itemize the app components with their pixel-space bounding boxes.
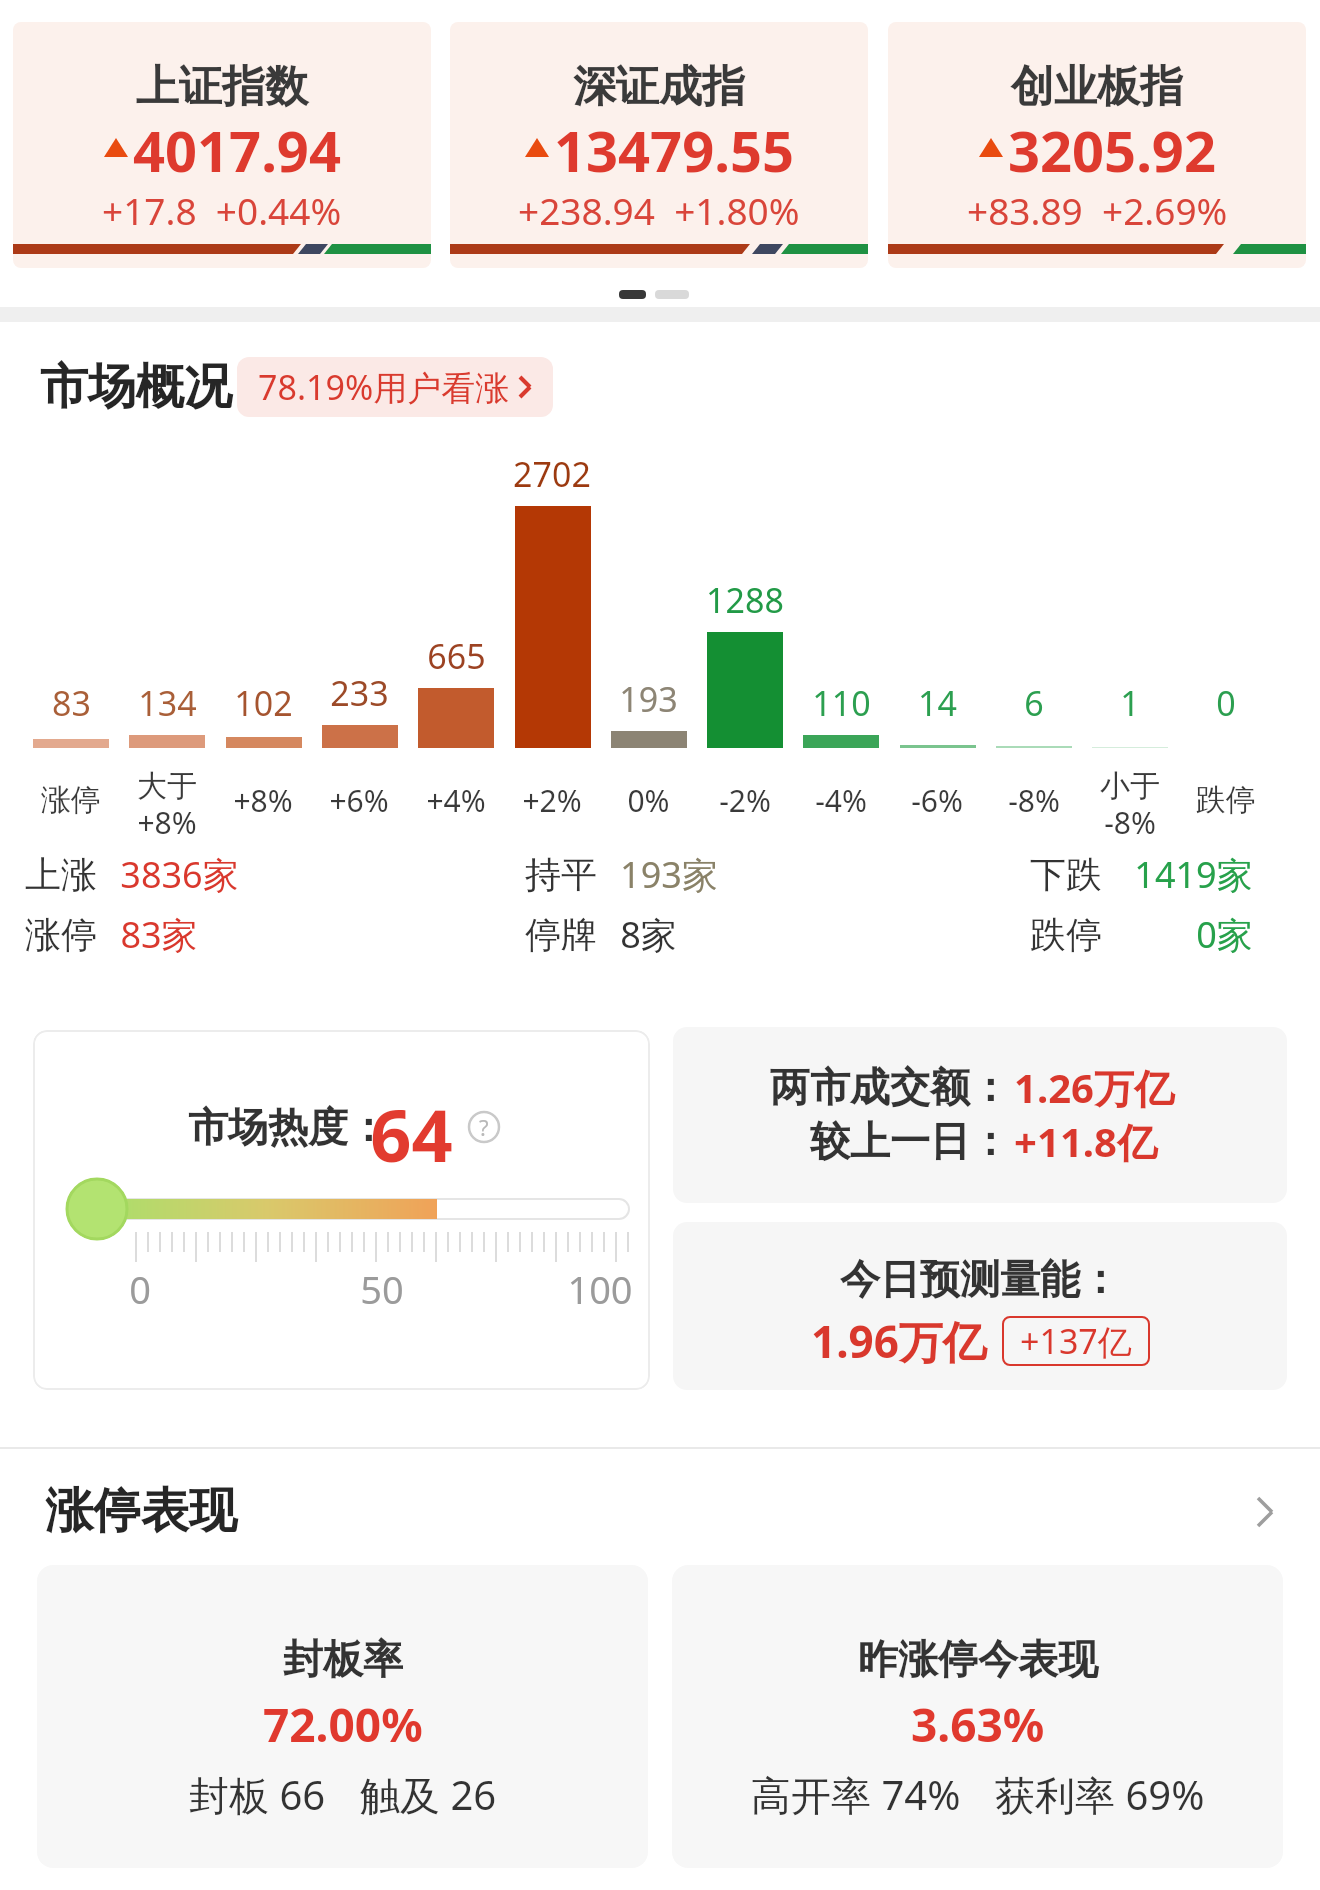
staticText: 1.26万亿 (1014, 1060, 1174, 1115)
staticText: 102 (234, 680, 293, 726)
staticText: 193家 (620, 850, 718, 899)
staticText: 8家 (620, 910, 677, 959)
staticText: 市场热度： (188, 1102, 388, 1152)
staticText: 昨涨停今表现 (858, 1634, 1098, 1684)
staticText: +6% (329, 780, 389, 821)
staticText: 78.19%用户看涨 (258, 364, 510, 410)
button[interactable] (33, 1030, 650, 1390)
staticText: 6 (1024, 680, 1044, 726)
staticText: 3836家 (120, 850, 239, 899)
button[interactable] (673, 1222, 1287, 1390)
staticText: 下跌 (1030, 852, 1102, 897)
staticText: +8% (233, 780, 293, 821)
staticText: -4% (815, 780, 867, 821)
staticText: 2702 (513, 451, 591, 497)
staticText: 涨停 (25, 912, 97, 957)
button[interactable]: 创业板指 (888, 22, 1306, 268)
staticText: ? (479, 1112, 489, 1142)
staticText: 110 (812, 680, 871, 726)
staticText: 1288 (706, 577, 784, 623)
staticText: 13479.55 (554, 112, 794, 182)
staticText: -8% (1008, 780, 1060, 821)
button[interactable]: 封板率 (37, 1565, 648, 1868)
staticText: 停牌 (525, 912, 597, 957)
staticText: 0% (627, 780, 670, 821)
staticText: 4017.94 (133, 112, 341, 182)
staticText: 封板率 (283, 1634, 403, 1684)
staticText: +2% (522, 780, 582, 821)
staticText: 上涨 (25, 852, 97, 897)
staticText: +17.8 +0.44% (102, 185, 342, 235)
button[interactable] (673, 1027, 1287, 1203)
staticText: 涨停表现 (45, 1481, 237, 1541)
staticText: 较上一日： (810, 1116, 1010, 1166)
button[interactable]: 昨涨停今表现 (672, 1565, 1283, 1868)
staticText: 3205.92 (1008, 112, 1216, 182)
staticText: 0家 (1196, 910, 1253, 959)
staticText: 上证指数 (136, 60, 308, 114)
staticText: +4% (426, 780, 486, 821)
staticText: 1 (1120, 680, 1140, 726)
staticText: 触及 26 (360, 1767, 497, 1822)
staticText: +11.8亿 (1014, 1114, 1157, 1169)
staticText: 跌停 (1030, 912, 1102, 957)
button[interactable]: 78.19%用户看涨 (237, 357, 553, 417)
button[interactable]: +137亿 (1002, 1316, 1150, 1366)
staticText: 涨停 (41, 781, 101, 819)
staticText: 100 (567, 1263, 633, 1313)
staticText: 193 (619, 676, 678, 722)
staticText: 0 (1216, 680, 1236, 726)
staticText: 大于 +8% (137, 767, 197, 843)
staticText: -2% (719, 780, 771, 821)
staticText: 小于 -8% (1100, 767, 1160, 843)
staticText: 创业板指 (1011, 60, 1183, 114)
staticText: 665 (427, 633, 486, 679)
staticText: 14 (918, 680, 957, 726)
button[interactable]: 涨停表现 (0, 1480, 1320, 1542)
staticText: +238.94 +1.80% (518, 185, 800, 235)
staticText: 市场概况 (40, 357, 232, 417)
staticText: 封板 66 (189, 1767, 326, 1822)
staticText: 83家 (120, 910, 198, 959)
staticText: 两市成交额： (770, 1062, 1010, 1112)
staticText: +137亿 (1020, 1318, 1132, 1364)
button[interactable]: 深证成指 (450, 22, 868, 268)
staticText: 1.96万亿 (811, 1311, 987, 1371)
staticText: 深证成指 (573, 60, 745, 114)
staticText: 高开率 74% (751, 1767, 961, 1822)
button[interactable]: 上证指数 (13, 22, 431, 268)
staticText: 今日预测量能： (840, 1254, 1120, 1304)
staticText: 233 (330, 670, 389, 716)
staticText: 持平 (525, 852, 597, 897)
staticText: 1419家 (1134, 850, 1253, 899)
staticText: 83 (52, 680, 91, 726)
staticText: -6% (911, 780, 963, 821)
staticText: 3.63% (911, 1693, 1045, 1753)
staticText: +83.89 +2.69% (967, 185, 1228, 235)
staticText: 0 (129, 1263, 151, 1313)
staticText: 72.00% (263, 1693, 423, 1753)
staticText: 50 (360, 1263, 404, 1313)
staticText: 获利率 69% (995, 1767, 1205, 1822)
staticText: 64 (370, 1085, 453, 1169)
staticText: 134 (138, 680, 197, 726)
staticText: 跌停 (1196, 781, 1256, 819)
